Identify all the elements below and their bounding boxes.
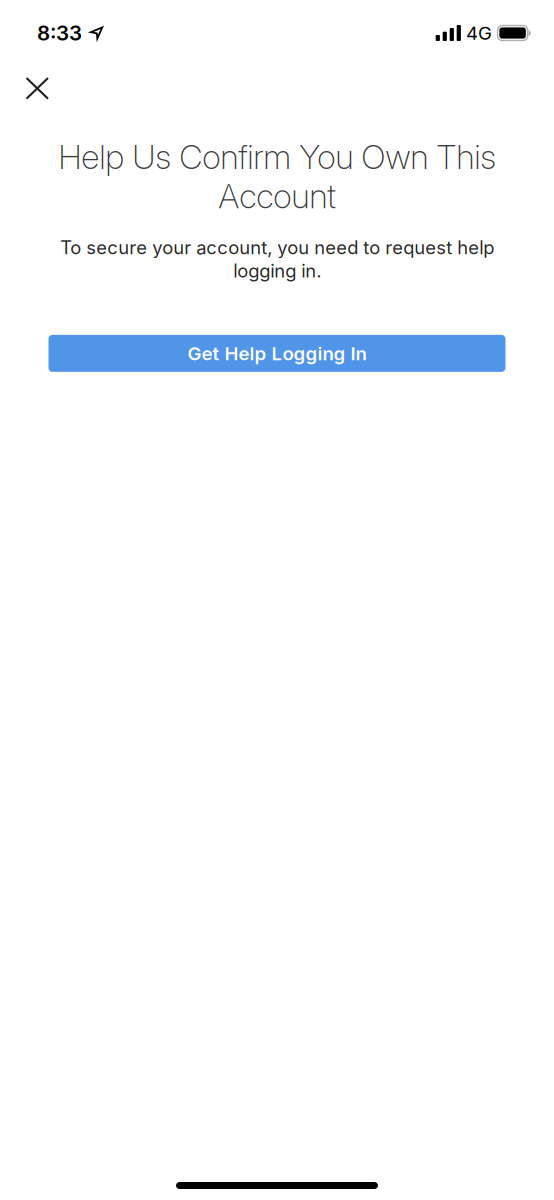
staticText: To secure your account, you need to requ…: [60, 236, 494, 282]
staticText: Help Us Confirm You Own This Account: [58, 137, 496, 216]
staticText: 4G: [466, 22, 492, 44]
button[interactable]: Close: [7, 66, 67, 111]
staticText: 8:33: [37, 21, 82, 45]
button[interactable]: Get Help Logging In: [48, 335, 505, 372]
staticText: Get Help Logging In: [187, 342, 366, 365]
